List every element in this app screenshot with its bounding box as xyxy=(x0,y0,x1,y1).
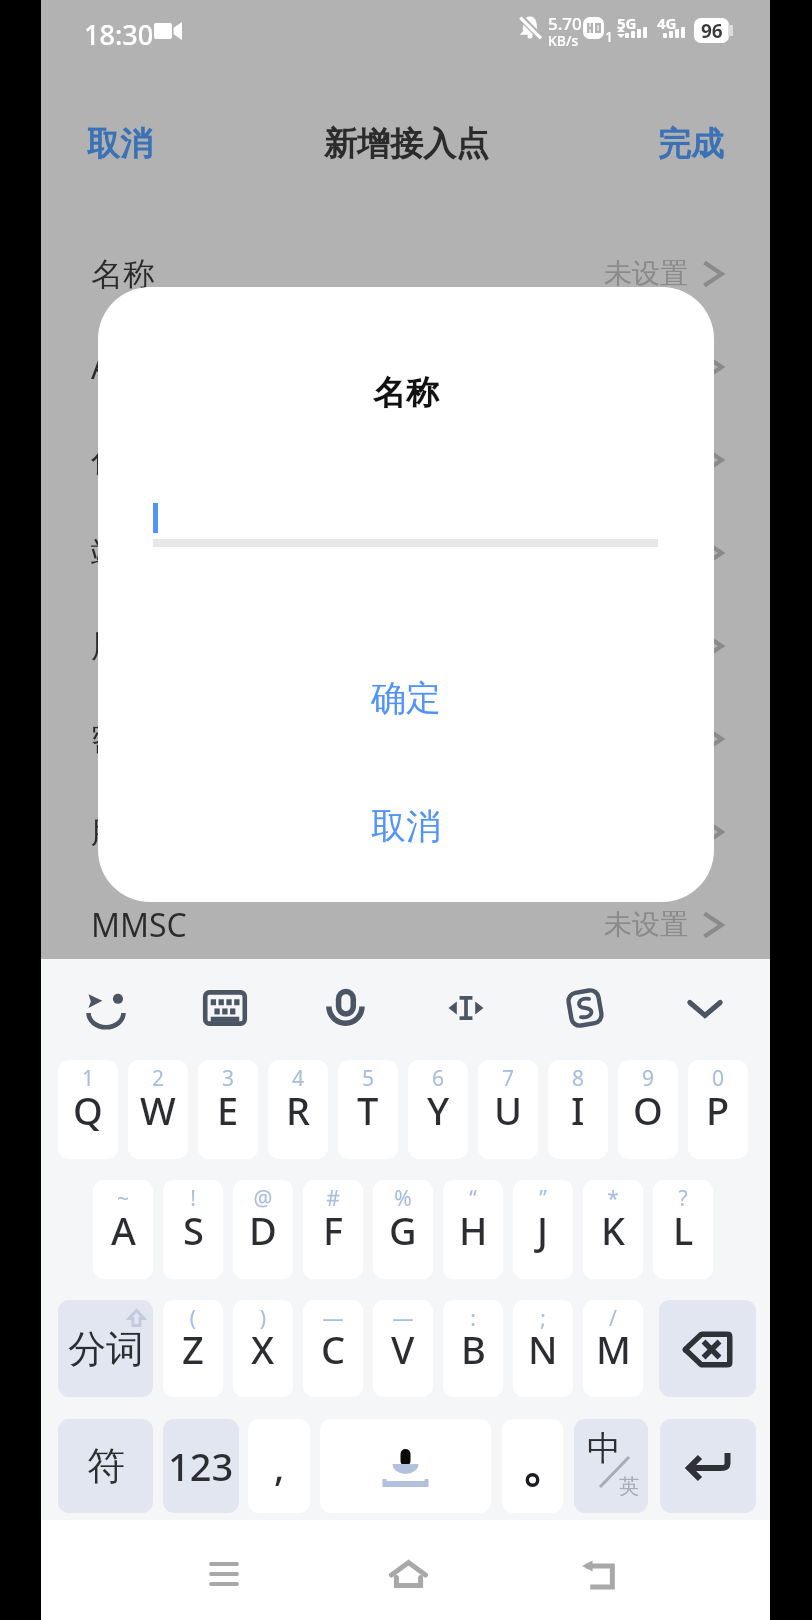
button[interactable]: ! xyxy=(163,1180,223,1279)
button[interactable]: “ xyxy=(443,1180,503,1279)
staticText: 0 xyxy=(688,1064,748,1093)
staticText: ~ xyxy=(93,1184,153,1213)
button[interactable]: 代理 xyxy=(41,413,770,506)
button[interactable]: 完成 xyxy=(641,104,741,184)
staticText: F xyxy=(323,1204,344,1256)
button[interactable]: ) xyxy=(233,1300,293,1397)
staticText: J xyxy=(537,1204,549,1256)
button[interactable]: APN xyxy=(41,320,770,413)
button[interactable]: Back xyxy=(558,1534,638,1614)
button[interactable] xyxy=(659,1300,756,1397)
staticText: 端口 xyxy=(91,533,155,573)
button[interactable]: 分词 xyxy=(58,1300,153,1397)
staticText: 密码 xyxy=(91,719,155,759)
staticText: T xyxy=(357,1084,379,1136)
staticText: 确定 xyxy=(371,676,441,720)
button[interactable]: 4 xyxy=(268,1060,328,1159)
staticText: 96 xyxy=(701,18,723,43)
button[interactable]: 9 xyxy=(618,1060,678,1159)
button[interactable]: / xyxy=(583,1300,643,1397)
button[interactable]: — xyxy=(303,1300,363,1397)
button[interactable]: 用户名 xyxy=(41,599,770,692)
button[interactable]: 123 xyxy=(163,1419,239,1513)
button[interactable]: : xyxy=(443,1300,503,1397)
button[interactable]: 端口 xyxy=(41,506,770,599)
button[interactable]: % xyxy=(373,1180,433,1279)
button[interactable]: # xyxy=(303,1180,363,1279)
staticText: W xyxy=(140,1084,176,1136)
button[interactable]: 8 xyxy=(548,1060,608,1159)
staticText: : xyxy=(443,1304,503,1333)
button[interactable]: ? xyxy=(653,1180,713,1279)
button[interactable]: 0 xyxy=(688,1060,748,1159)
button[interactable]: Home xyxy=(366,1534,450,1614)
button[interactable]: Voice input xyxy=(311,974,379,1042)
button[interactable]: ~ xyxy=(93,1180,153,1279)
button[interactable]: 5 xyxy=(338,1060,398,1159)
button[interactable] xyxy=(660,1419,756,1513)
button[interactable]: — xyxy=(373,1300,433,1397)
staticText: L xyxy=(673,1204,694,1256)
button[interactable]: 确定 xyxy=(98,653,714,743)
staticText: 7 xyxy=(478,1064,538,1093)
staticText: 4G xyxy=(657,13,677,33)
button[interactable]: 服务器 xyxy=(41,785,770,878)
button[interactable]: 密码 xyxy=(41,692,770,785)
button[interactable]: MMSC xyxy=(41,878,770,971)
staticText: Q xyxy=(73,1084,103,1136)
staticText: E xyxy=(217,1084,239,1136)
button[interactable]: Keyboard layout xyxy=(191,974,259,1042)
staticText: 9 xyxy=(618,1064,678,1093)
button[interactable]: 7 xyxy=(478,1060,538,1159)
button[interactable] xyxy=(502,1419,563,1513)
button[interactable]: 取消 xyxy=(70,104,170,184)
staticText: V xyxy=(391,1323,415,1375)
staticText: 123 xyxy=(168,1440,234,1492)
button[interactable] xyxy=(574,1419,648,1513)
staticText: ) xyxy=(233,1304,293,1333)
staticText: R xyxy=(286,1084,311,1136)
staticText: KB/s xyxy=(548,31,579,50)
staticText: S xyxy=(183,1204,204,1256)
button[interactable]: 符 xyxy=(58,1419,153,1513)
staticText: % xyxy=(373,1184,433,1213)
staticText: @ xyxy=(233,1184,293,1213)
staticText: O xyxy=(633,1084,663,1136)
staticText: 中 xyxy=(587,1427,621,1469)
button[interactable]: , xyxy=(248,1419,310,1513)
staticText: 5.70 xyxy=(548,12,582,35)
button[interactable]: 名称 xyxy=(41,227,770,320)
staticText: 5 xyxy=(338,1064,398,1093)
staticText: P xyxy=(706,1084,730,1136)
staticText: 8 xyxy=(548,1064,608,1093)
staticText: Z xyxy=(182,1323,204,1375)
button[interactable]: Recent apps xyxy=(184,1537,264,1611)
button[interactable] xyxy=(320,1419,491,1513)
button[interactable]: ; xyxy=(513,1300,573,1397)
staticText: 未设置 xyxy=(604,256,688,291)
button[interactable]: Move cursor xyxy=(432,974,500,1042)
staticText: 1 xyxy=(58,1064,118,1093)
button[interactable]: ( xyxy=(163,1300,223,1397)
staticText: I xyxy=(571,1084,585,1136)
staticText: 名称 xyxy=(91,254,155,294)
button[interactable]: Hide keyboard xyxy=(671,974,739,1042)
staticText: G xyxy=(389,1204,417,1256)
staticText: / xyxy=(583,1304,643,1333)
button[interactable]: 6 xyxy=(408,1060,468,1159)
button[interactable]: * xyxy=(583,1180,643,1279)
staticText: 未设置 xyxy=(604,907,688,942)
staticText: K xyxy=(601,1204,626,1256)
staticText: # xyxy=(303,1184,363,1213)
button[interactable]: Sogou xyxy=(551,974,619,1042)
button[interactable]: Emoji xyxy=(72,974,140,1042)
button[interactable]: 2 xyxy=(128,1060,188,1159)
staticText: MMSC xyxy=(91,903,187,947)
button[interactable]: ” xyxy=(513,1180,573,1279)
button[interactable]: 取消 xyxy=(98,781,714,871)
button[interactable]: @ xyxy=(233,1180,293,1279)
button[interactable]: 3 xyxy=(198,1060,258,1159)
button[interactable]: 1 xyxy=(58,1060,118,1159)
